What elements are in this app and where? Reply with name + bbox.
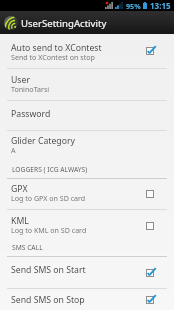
button[interactable]: Password [0,101,174,130]
button[interactable]: Send SMS on Start [0,257,174,288]
staticText: ToninoTarsi [11,84,50,94]
staticText: SMS CALL [12,243,43,252]
staticText: Send SMS on Start [11,264,86,276]
staticText: KML [11,215,29,227]
staticText: A [11,145,16,155]
button[interactable]: Glider Category [0,131,174,162]
staticText: Auto send to XContest [11,42,102,54]
button[interactable]: KML [142,218,158,234]
button[interactable]: Send SMS on Stop [0,289,174,310]
staticText: Send to XContest on stop [11,52,95,62]
staticText: Log to KML on SD card [11,225,87,235]
staticText: UserSettingActivity [21,17,107,30]
button[interactable]: GPX [0,179,174,209]
button[interactable]: Send SMS on Start [142,265,158,281]
staticText: 95% [126,1,141,11]
button[interactable]: User [0,69,174,100]
button[interactable]: UserSettingActivity [0,11,174,34]
staticText: 13:15 [150,0,171,11]
button[interactable]: GPX [142,186,158,202]
staticText: GPX [11,183,28,195]
button[interactable]: Auto send to XContest [0,34,174,68]
button[interactable]: KML [0,210,174,242]
staticText: Password [11,108,51,120]
staticText: User [11,74,30,86]
button[interactable]: Send SMS on Stop [142,292,158,308]
staticText: Glider Category [11,135,75,147]
staticText: Log to GPX on SD card [11,193,86,203]
button[interactable]: Auto send to XContest [142,43,158,59]
staticText: LOGGERS ( ICG ALWAYS) [12,165,88,174]
staticText: Send SMS on Stop [11,294,85,306]
